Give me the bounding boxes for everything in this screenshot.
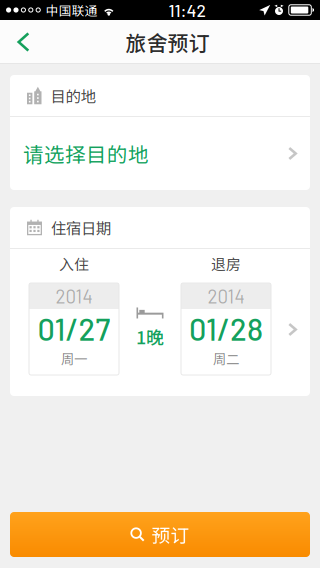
staticText: 退房 [211,253,241,274]
staticText: 2014 [55,285,92,307]
staticText: 1晚 [136,323,164,350]
staticText: 11:42 [168,0,205,20]
staticText: 中国联通 [46,1,98,19]
staticText: 目的地 [50,84,95,107]
button[interactable]: 入住 [10,249,310,396]
staticText: 周一 [61,349,87,368]
staticText: 住宿日期 [51,216,111,239]
staticText: 旅舍预订 [125,27,209,57]
staticText: 2014 [207,285,244,307]
staticText: 周二 [213,349,239,368]
staticText: 请选择目的地 [23,139,149,168]
button[interactable]: 预订 [10,512,310,557]
staticText: 01/27 [37,310,110,347]
button[interactable]: 请选择目的地 [10,117,310,190]
staticText: 入住 [59,253,89,274]
staticText: 01/28 [189,310,263,347]
staticText: 预订 [151,521,189,548]
button[interactable]: 返回 [0,20,46,64]
